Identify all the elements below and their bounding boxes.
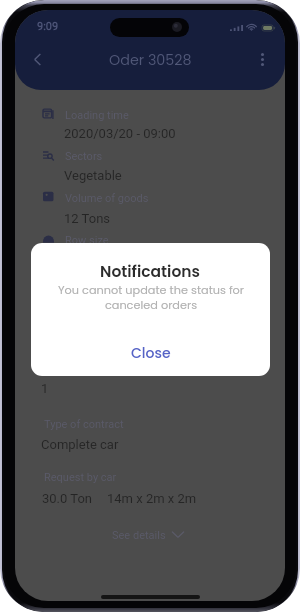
staticText: Sectors [65,150,103,163]
staticText: 2020/03/20 - 09:00 [64,126,176,141]
staticText: Vegetable [64,168,122,183]
staticText: You cannot update the status for cancele… [51,282,251,313]
staticText: See details [112,529,166,542]
staticText: 9:09 [37,20,59,33]
button[interactable]: See details [105,523,195,545]
button[interactable]: More options [249,46,275,72]
staticText: Request by car [44,471,117,484]
button[interactable]: Close [31,340,270,376]
staticText: Volume of goods [65,192,149,205]
staticText: 1 [41,381,49,396]
staticText: Close [131,343,171,363]
staticText: Loading time [65,109,129,122]
staticText: 14m x 2m x 2m [107,491,197,506]
button[interactable]: Back [23,45,51,73]
staticText: Type of contract [44,418,124,431]
staticText: Notifications [100,261,201,283]
staticText: Complete car [41,437,119,452]
staticText: Oder 30528 [109,50,192,70]
staticText: Row size [65,234,109,247]
staticText: 12 Tons [64,211,111,226]
staticText: 30.0 Ton [42,491,93,506]
